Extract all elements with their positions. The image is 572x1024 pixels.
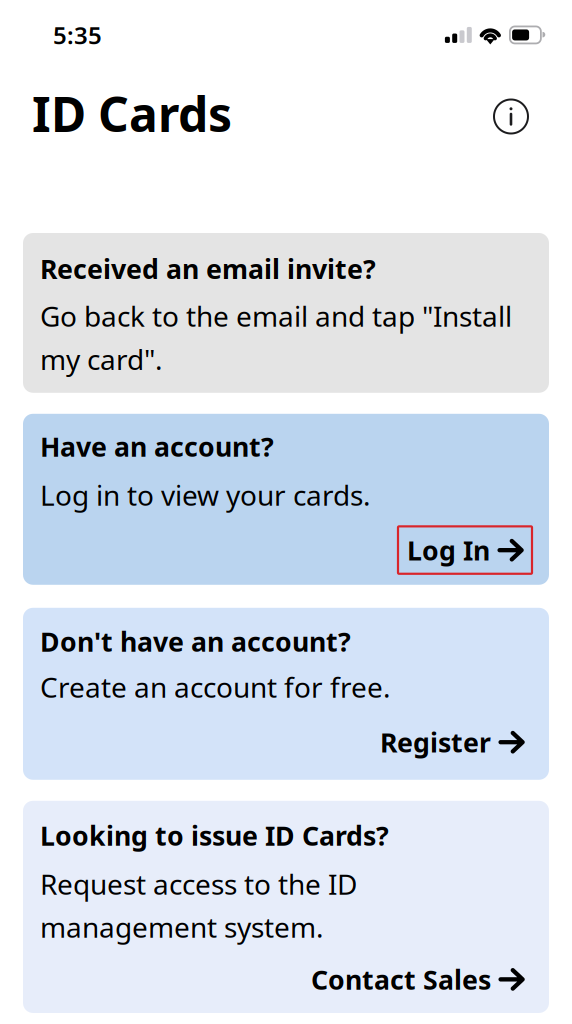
staticText: Go back to the email and tap "Install my… [40, 297, 512, 378]
staticText: Don't have an account? [40, 624, 351, 659]
button[interactable]: Contact Sales [311, 962, 532, 997]
staticText: Received an email invite? [40, 251, 376, 286]
staticText: Create an account for free. [40, 668, 391, 705]
staticText: Request access to the ID management syst… [40, 865, 357, 946]
staticText: Log In [407, 532, 490, 568]
staticText: 5:35 [53, 19, 102, 51]
button[interactable]: Information [489, 88, 533, 138]
button[interactable]: Log In [398, 526, 532, 574]
staticText: Log in to view your cards. [40, 476, 371, 513]
staticText: Looking to issue ID Cards? [40, 818, 389, 853]
staticText: Have an account? [40, 429, 274, 464]
staticText: ID Cards [32, 82, 232, 145]
button[interactable]: Register [380, 724, 532, 760]
staticText: Register [380, 724, 491, 760]
staticText: Contact Sales [311, 962, 491, 997]
